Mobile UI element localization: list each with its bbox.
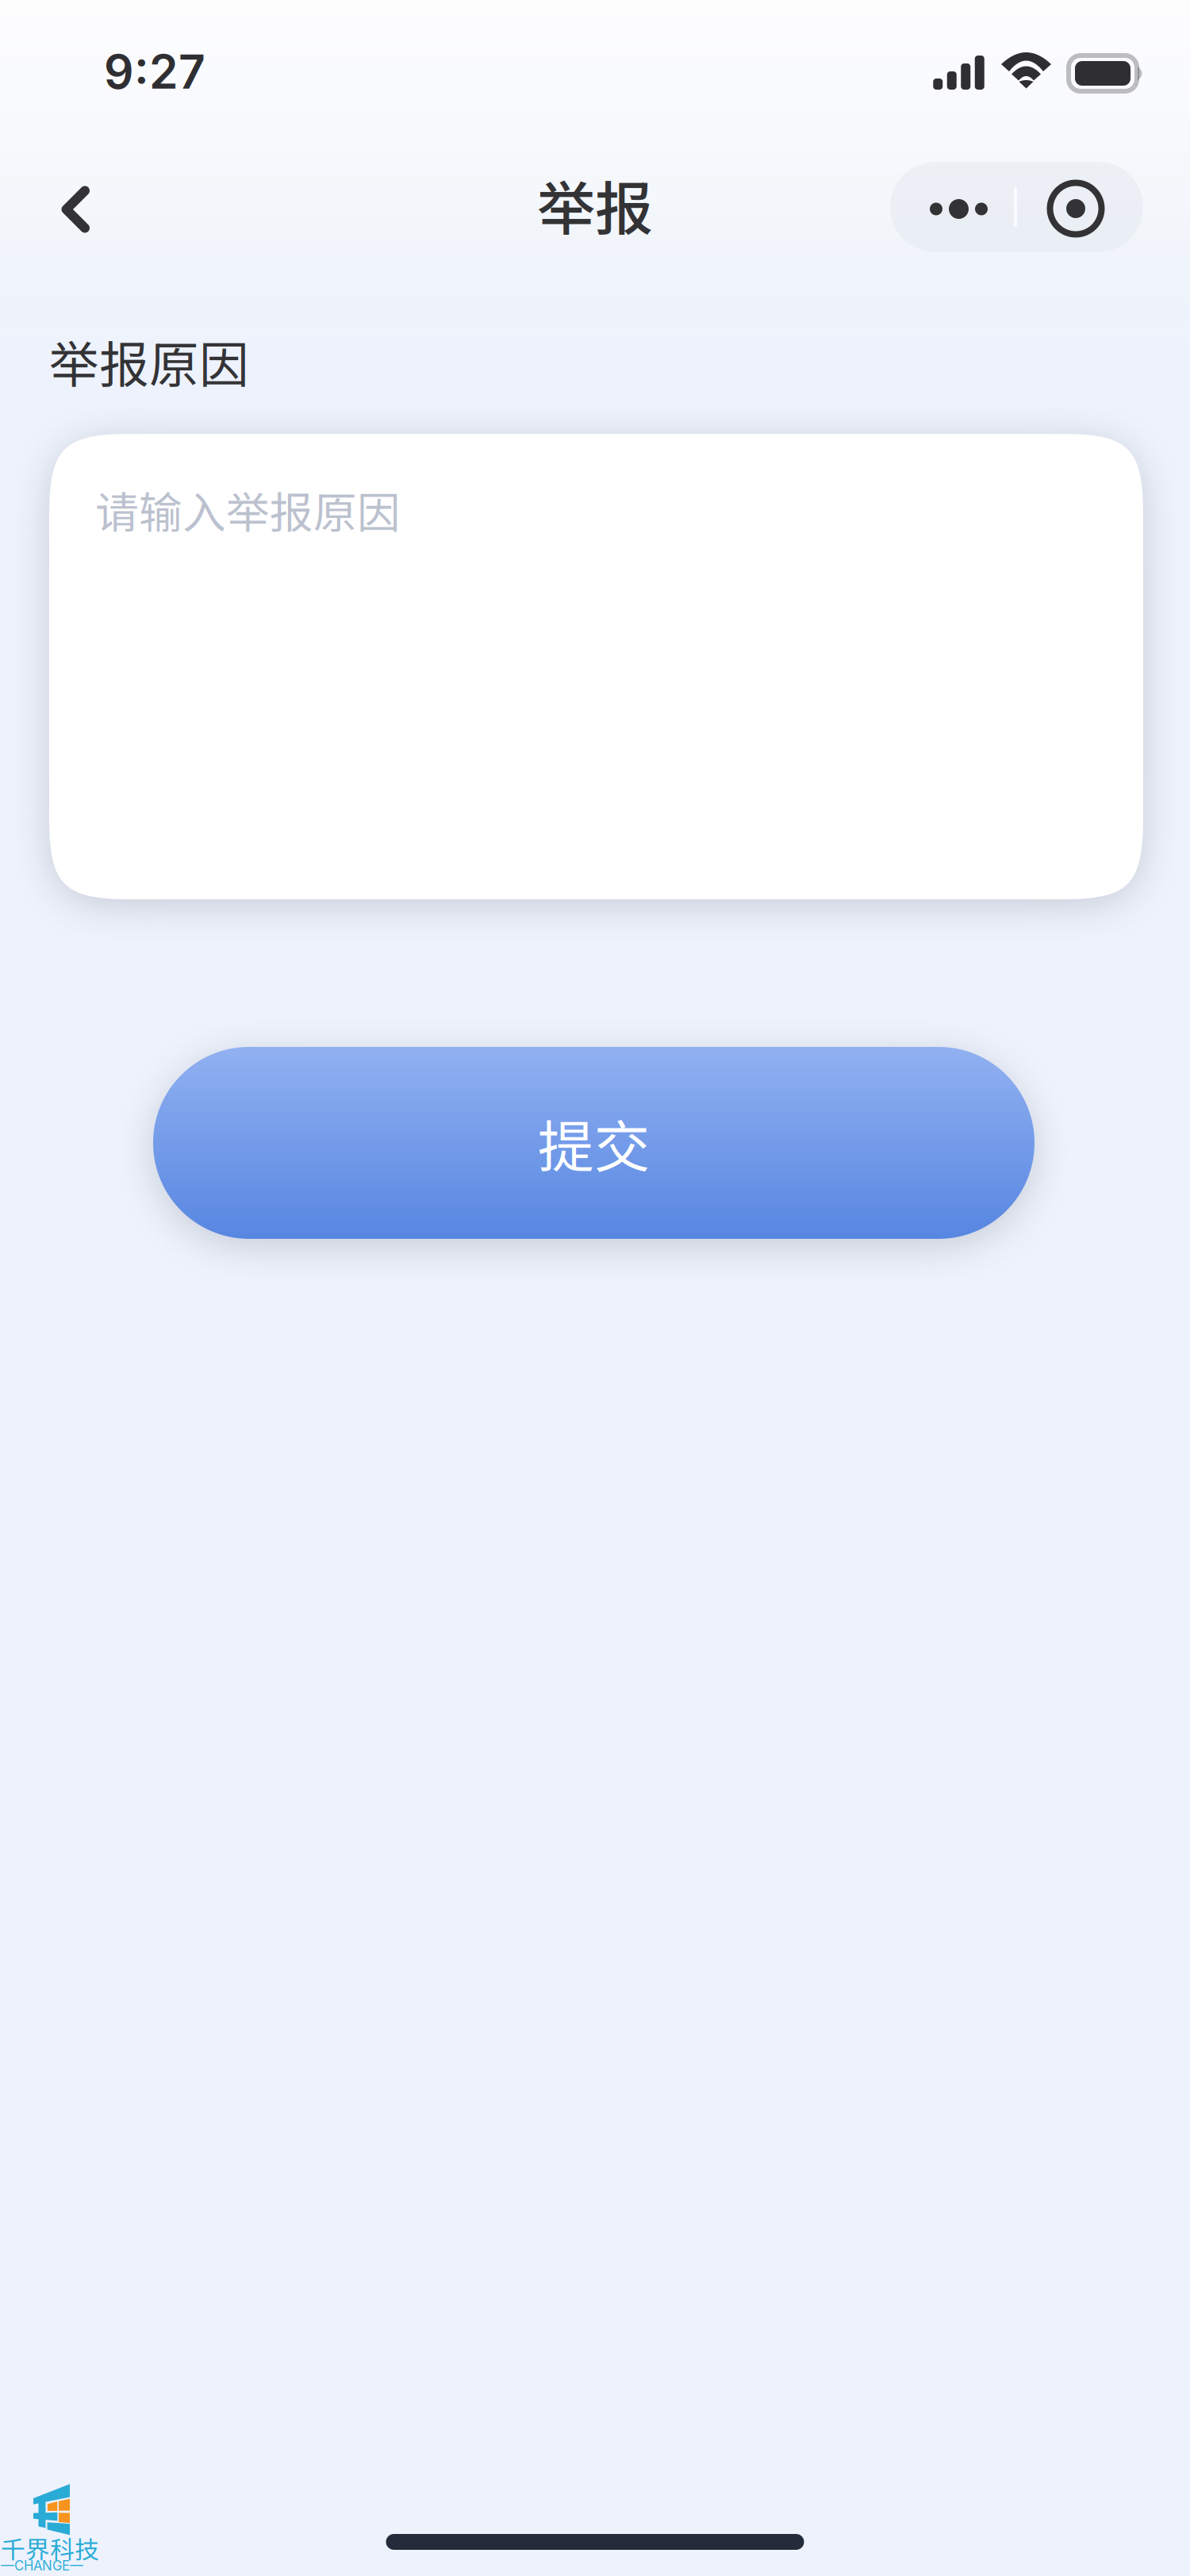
button[interactable]: Report reason input — [49, 434, 1143, 899]
button[interactable]: Back — [37, 171, 113, 247]
staticText: 请输入举报原因 — [95, 478, 401, 541]
staticText: 提交 — [537, 1102, 650, 1183]
button[interactable]: 提交 — [153, 1047, 1035, 1239]
button[interactable]: More options — [890, 162, 1143, 252]
staticText: —CHANGE— — [1, 2558, 83, 2574]
staticText: 举报 — [537, 163, 653, 247]
staticText: 9:27 — [104, 44, 205, 100]
staticText: 举报原因 — [49, 325, 249, 397]
staticText: 千界科技 — [1, 2531, 99, 2566]
